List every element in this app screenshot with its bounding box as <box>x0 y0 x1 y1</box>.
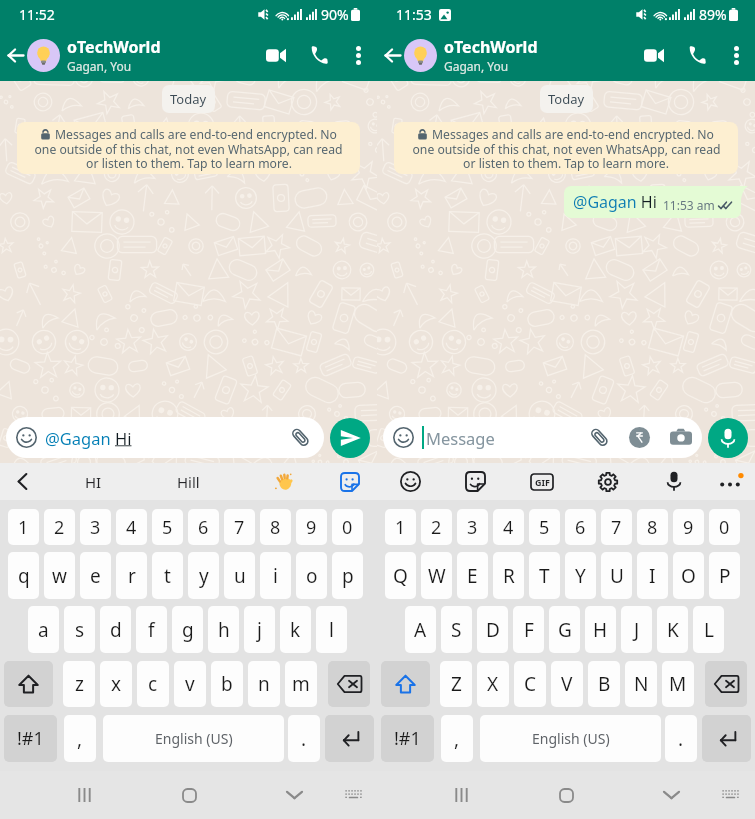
button[interactable]: Recents <box>56 771 112 819</box>
button[interactable]: 0 <box>709 509 740 545</box>
button[interactable]: Back <box>0 40 27 70</box>
button[interactable]: Emoji <box>384 463 436 500</box>
button[interactable]: 8 <box>260 509 291 545</box>
button[interactable] <box>27 39 60 72</box>
button[interactable]: Z <box>440 661 472 707</box>
button[interactable]: L <box>693 606 724 653</box>
button[interactable]: C <box>514 661 546 707</box>
button[interactable]: 5 <box>529 509 560 545</box>
button[interactable]: . <box>665 715 697 762</box>
button[interactable]: z <box>63 661 95 707</box>
button[interactable]: 4 <box>116 509 147 545</box>
button[interactable]: y <box>188 552 219 599</box>
button[interactable]: Send <box>330 418 370 458</box>
button[interactable]: @Gagan Hi <box>564 186 741 218</box>
button[interactable]: A <box>405 606 436 653</box>
button[interactable]: Y <box>565 552 596 599</box>
button[interactable]: Hide keyboard <box>704 771 755 819</box>
button[interactable]: Home <box>161 771 217 819</box>
button[interactable]: 0 <box>332 509 363 545</box>
button[interactable]: 2 <box>421 509 452 545</box>
button[interactable]: 3 <box>457 509 488 545</box>
button[interactable]: Attach <box>290 427 311 448</box>
button[interactable]: Messages and calls are end-to-end encryp… <box>17 122 360 174</box>
button[interactable]: English (US) <box>480 715 661 762</box>
button[interactable]: Messages and calls are end-to-end encryp… <box>394 122 738 174</box>
button[interactable]: Camera <box>670 428 692 447</box>
button[interactable]: Voice message <box>708 418 748 458</box>
button[interactable]: P <box>709 552 740 599</box>
button[interactable]: Previous suggestions <box>0 463 45 500</box>
button[interactable]: GIF <box>516 463 568 500</box>
button[interactable]: Emoji <box>6 417 324 458</box>
button[interactable]: f <box>136 606 167 653</box>
button[interactable]: Recents <box>433 771 489 819</box>
button[interactable]: HI <box>45 463 142 500</box>
button[interactable]: Home <box>538 771 594 819</box>
button[interactable]: English (US) <box>103 715 284 762</box>
button[interactable]: 4 <box>493 509 524 545</box>
button[interactable]: Today <box>162 85 215 113</box>
button[interactable]: S <box>441 606 472 653</box>
button[interactable]: w <box>44 552 75 599</box>
button[interactable]: u <box>224 552 255 599</box>
button[interactable]: 5 <box>152 509 183 545</box>
button[interactable]: T <box>529 552 560 599</box>
button[interactable]: . <box>288 715 320 762</box>
button[interactable]: oTechWorld <box>67 36 247 74</box>
button[interactable]: J <box>621 606 652 653</box>
button[interactable]: Voice input <box>648 463 700 500</box>
button[interactable] <box>404 39 437 72</box>
button[interactable]: Emoji <box>383 417 702 458</box>
button[interactable]: r <box>116 552 147 599</box>
button[interactable]: Back <box>377 40 404 70</box>
button[interactable]: Stickers <box>322 463 377 500</box>
button[interactable]: O <box>673 552 704 599</box>
button[interactable]: Q <box>385 552 416 599</box>
button[interactable]: Hide keyboard <box>327 771 379 819</box>
button[interactable]: E <box>457 552 488 599</box>
button[interactable]: F <box>513 606 544 653</box>
button[interactable]: Shift <box>381 661 430 707</box>
button[interactable]: Back <box>643 771 699 819</box>
button[interactable]: Stickers <box>449 463 501 500</box>
button[interactable]: n <box>248 661 280 707</box>
button[interactable]: 3 <box>80 509 111 545</box>
button[interactable]: I <box>637 552 668 599</box>
button[interactable]: X <box>477 661 509 707</box>
button[interactable]: Today <box>540 85 593 113</box>
button[interactable]: oTechWorld <box>444 36 625 74</box>
button[interactable]: p <box>332 552 363 599</box>
button[interactable]: Enter <box>702 715 751 762</box>
button[interactable]: H <box>585 606 616 653</box>
button[interactable]: j <box>244 606 275 653</box>
button[interactable]: 7 <box>601 509 632 545</box>
button[interactable]: Video call <box>625 32 673 78</box>
button[interactable]: Settings <box>582 463 634 500</box>
button[interactable]: , <box>441 715 473 762</box>
button[interactable]: g <box>172 606 203 653</box>
button[interactable]: 1 <box>385 509 416 545</box>
button[interactable]: 2 <box>44 509 75 545</box>
button[interactable]: Shift <box>4 661 53 707</box>
button[interactable]: Voice call <box>673 32 717 78</box>
button[interactable]: , <box>64 715 96 762</box>
button[interactable]: G <box>549 606 580 653</box>
button[interactable]: c <box>137 661 169 707</box>
button[interactable]: N <box>625 661 657 707</box>
button[interactable]: t <box>152 552 183 599</box>
button[interactable]: B <box>588 661 620 707</box>
button[interactable]: Hill <box>142 463 235 500</box>
button[interactable]: W <box>421 552 452 599</box>
button[interactable]: q <box>8 552 39 599</box>
button[interactable]: 9 <box>296 509 327 545</box>
button[interactable]: m <box>285 661 317 707</box>
button[interactable]: Wave emoji <box>249 463 318 500</box>
button[interactable]: k <box>280 606 311 653</box>
button[interactable]: Voice call <box>295 32 339 78</box>
button[interactable]: 1 <box>8 509 39 545</box>
button[interactable]: b <box>211 661 243 707</box>
button[interactable]: M <box>662 661 694 707</box>
button[interactable]: More options <box>717 32 755 78</box>
button[interactable]: Enter <box>325 715 374 762</box>
